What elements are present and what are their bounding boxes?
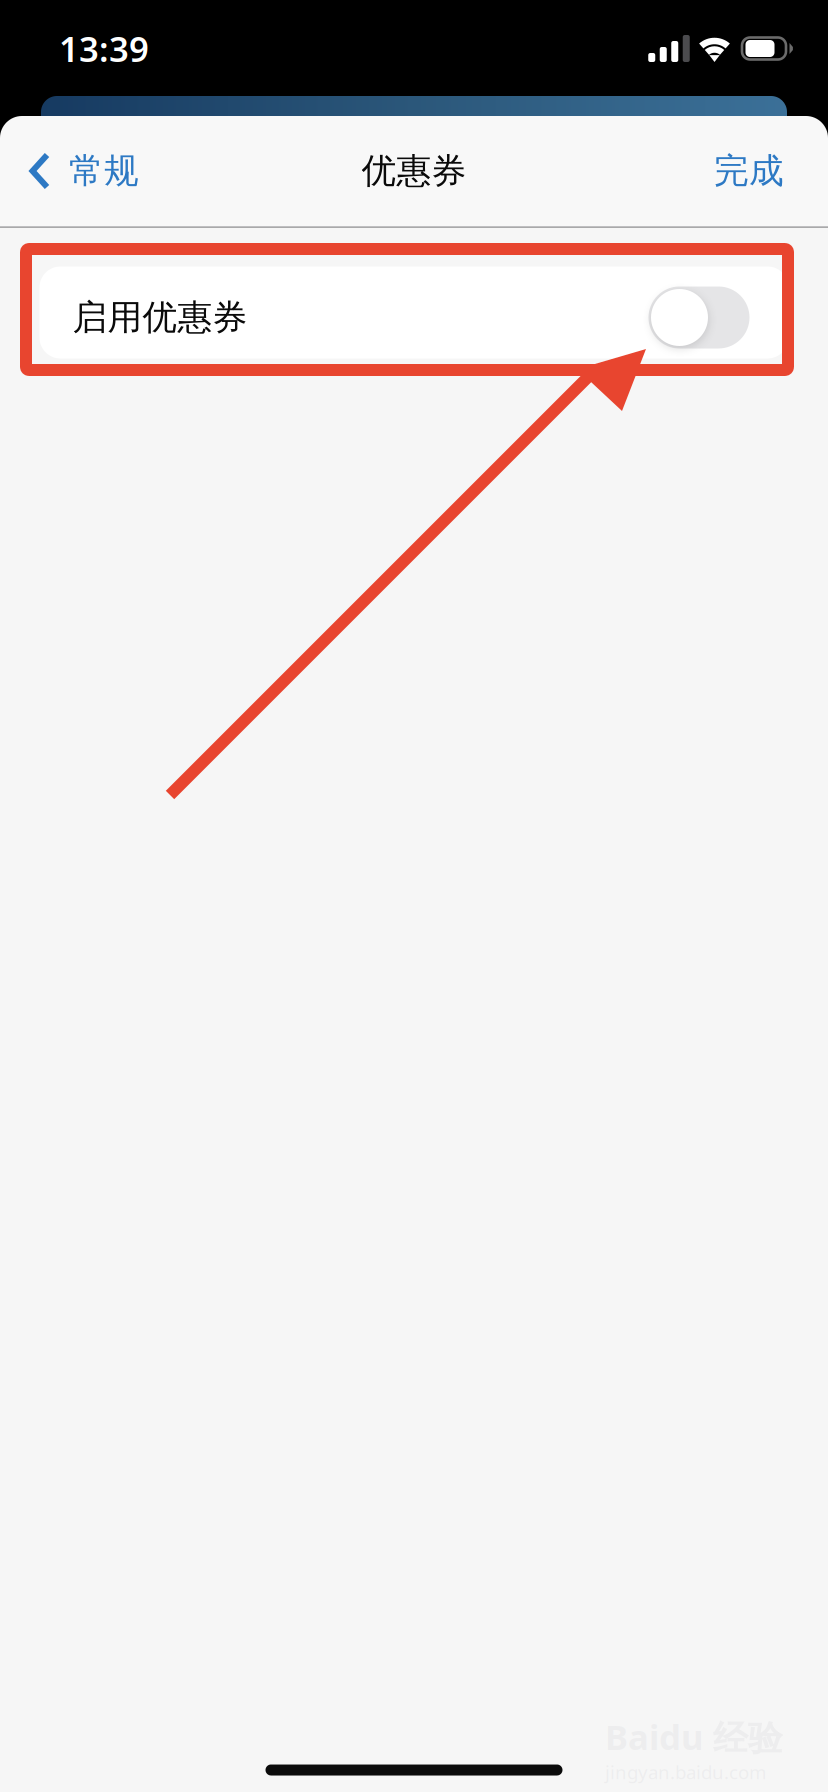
- button[interactable]: 完成: [670, 116, 828, 226]
- staticText: Baidu 经验: [605, 1713, 783, 1760]
- button[interactable]: 启用优惠券: [648, 281, 749, 343]
- staticText: 优惠券: [361, 150, 466, 192]
- staticText: 启用优惠券: [72, 296, 247, 339]
- button[interactable]: 常规: [0, 116, 159, 226]
- staticText: 13:39: [59, 25, 149, 71]
- staticText: 完成: [714, 150, 784, 192]
- staticText: 常规: [69, 150, 139, 192]
